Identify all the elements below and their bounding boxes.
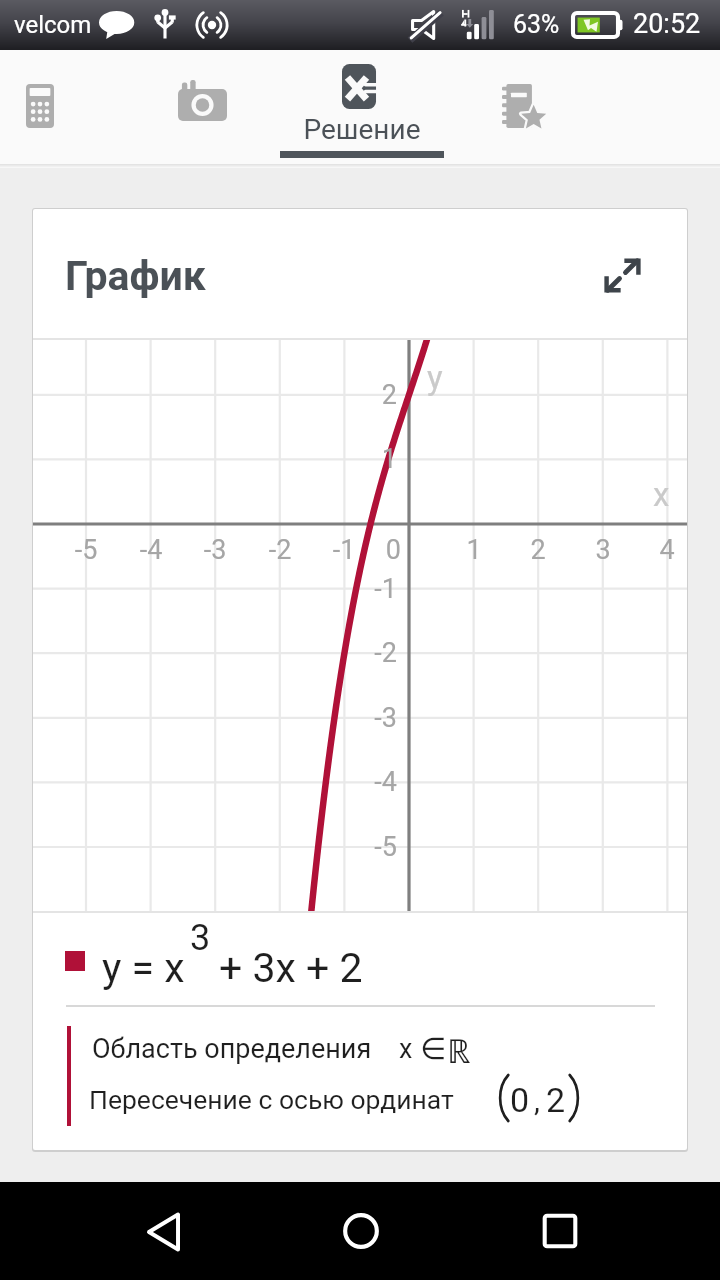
staticText: , bbox=[534, 1083, 540, 1118]
staticText: ∈ bbox=[420, 1031, 447, 1066]
staticText: + 3x + 2 bbox=[219, 944, 363, 992]
staticText: 2 bbox=[317, 379, 397, 411]
staticText: 2 bbox=[508, 534, 568, 566]
button[interactable]: Камера bbox=[122, 50, 282, 168]
staticText: y bbox=[427, 358, 443, 397]
button[interactable]: Недавние приложения bbox=[510, 1182, 610, 1280]
staticText: -1 bbox=[314, 534, 374, 566]
staticText: Решение bbox=[280, 113, 444, 146]
staticText: 63% bbox=[513, 10, 560, 39]
staticText: 1 bbox=[317, 443, 397, 475]
staticText: -4 bbox=[121, 534, 181, 566]
button[interactable]: Решение bbox=[280, 50, 444, 168]
staticText: Область определения bbox=[92, 1033, 372, 1065]
staticText: -3 bbox=[317, 702, 397, 734]
staticText: ℝ bbox=[447, 1028, 471, 1073]
button[interactable]: Главный экран bbox=[311, 1182, 411, 1280]
staticText: 4 bbox=[637, 534, 687, 566]
staticText: 2 bbox=[546, 1080, 566, 1120]
button[interactable]: Развернуть график bbox=[587, 240, 657, 310]
staticText: 3 bbox=[573, 534, 633, 566]
staticText: -4 bbox=[317, 766, 397, 798]
button[interactable]: Назад bbox=[113, 1182, 213, 1280]
staticText: -2 bbox=[317, 637, 397, 669]
staticText: -1 bbox=[317, 573, 397, 605]
staticText: 20:52 bbox=[633, 8, 701, 40]
staticText: Пересечение с осью ординат bbox=[89, 1084, 454, 1115]
staticText: График bbox=[65, 252, 206, 300]
staticText: 3 bbox=[190, 917, 211, 959]
staticText: -2 bbox=[250, 534, 310, 566]
button[interactable]: Избранное bbox=[441, 50, 601, 168]
staticText: y = x bbox=[102, 944, 185, 992]
staticText: x bbox=[399, 1033, 413, 1065]
staticText: -5 bbox=[317, 831, 397, 863]
staticText: velcom bbox=[14, 11, 92, 39]
staticText: x bbox=[653, 475, 670, 514]
staticText: 0 bbox=[369, 534, 401, 566]
staticText: 0 bbox=[510, 1080, 530, 1120]
button[interactable]: Калькулятор bbox=[0, 50, 118, 168]
staticText: -5 bbox=[56, 534, 116, 566]
staticText: 1 bbox=[444, 534, 504, 566]
staticText: -3 bbox=[185, 534, 245, 566]
